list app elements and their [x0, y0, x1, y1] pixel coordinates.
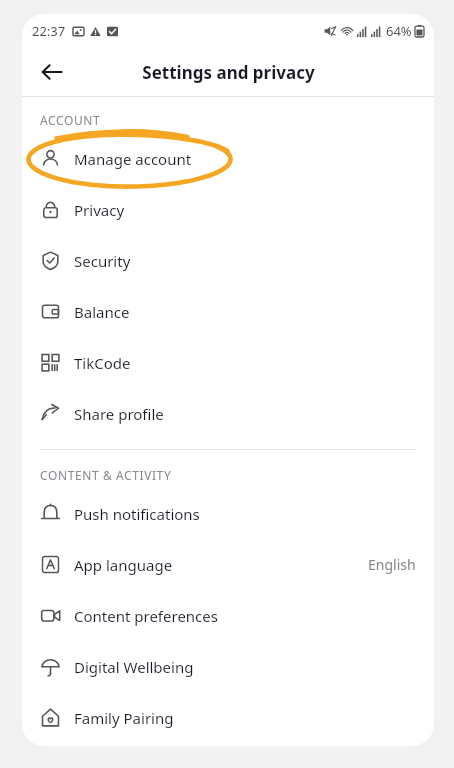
staticText: ACCOUNT: [40, 112, 101, 128]
staticText: English: [368, 555, 416, 574]
staticText: 64%: [386, 22, 412, 40]
staticText: Security: [74, 251, 131, 271]
staticText: Privacy: [74, 200, 125, 220]
staticText: CONTENT & ACTIVITY: [40, 467, 172, 483]
button[interactable]: Content preferences: [22, 590, 434, 641]
staticText: TikCode: [74, 353, 131, 373]
button[interactable]: Push notifications: [22, 488, 434, 539]
button[interactable]: Privacy: [22, 184, 434, 235]
staticText: Share profile: [74, 404, 164, 424]
button[interactable]: App language: [22, 539, 434, 590]
button[interactable]: Balance: [22, 286, 434, 337]
button[interactable]: TikCode: [22, 337, 434, 388]
staticText: App language: [74, 555, 173, 575]
staticText: Content preferences: [74, 606, 218, 626]
staticText: Family Pairing: [74, 708, 174, 728]
staticText: Digital Wellbeing: [74, 657, 194, 677]
staticText: Settings and privacy: [142, 61, 315, 84]
staticText: 22:37: [32, 22, 66, 40]
button[interactable]: Family Pairing: [22, 692, 434, 743]
staticText: Push notifications: [74, 504, 200, 524]
staticText: Manage account: [74, 149, 192, 169]
button[interactable]: Back: [30, 50, 74, 94]
staticText: Balance: [74, 302, 130, 322]
button[interactable]: Share profile: [22, 388, 434, 439]
button[interactable]: Digital Wellbeing: [22, 641, 434, 692]
button[interactable]: Manage account: [22, 133, 434, 184]
button[interactable]: Security: [22, 235, 434, 286]
